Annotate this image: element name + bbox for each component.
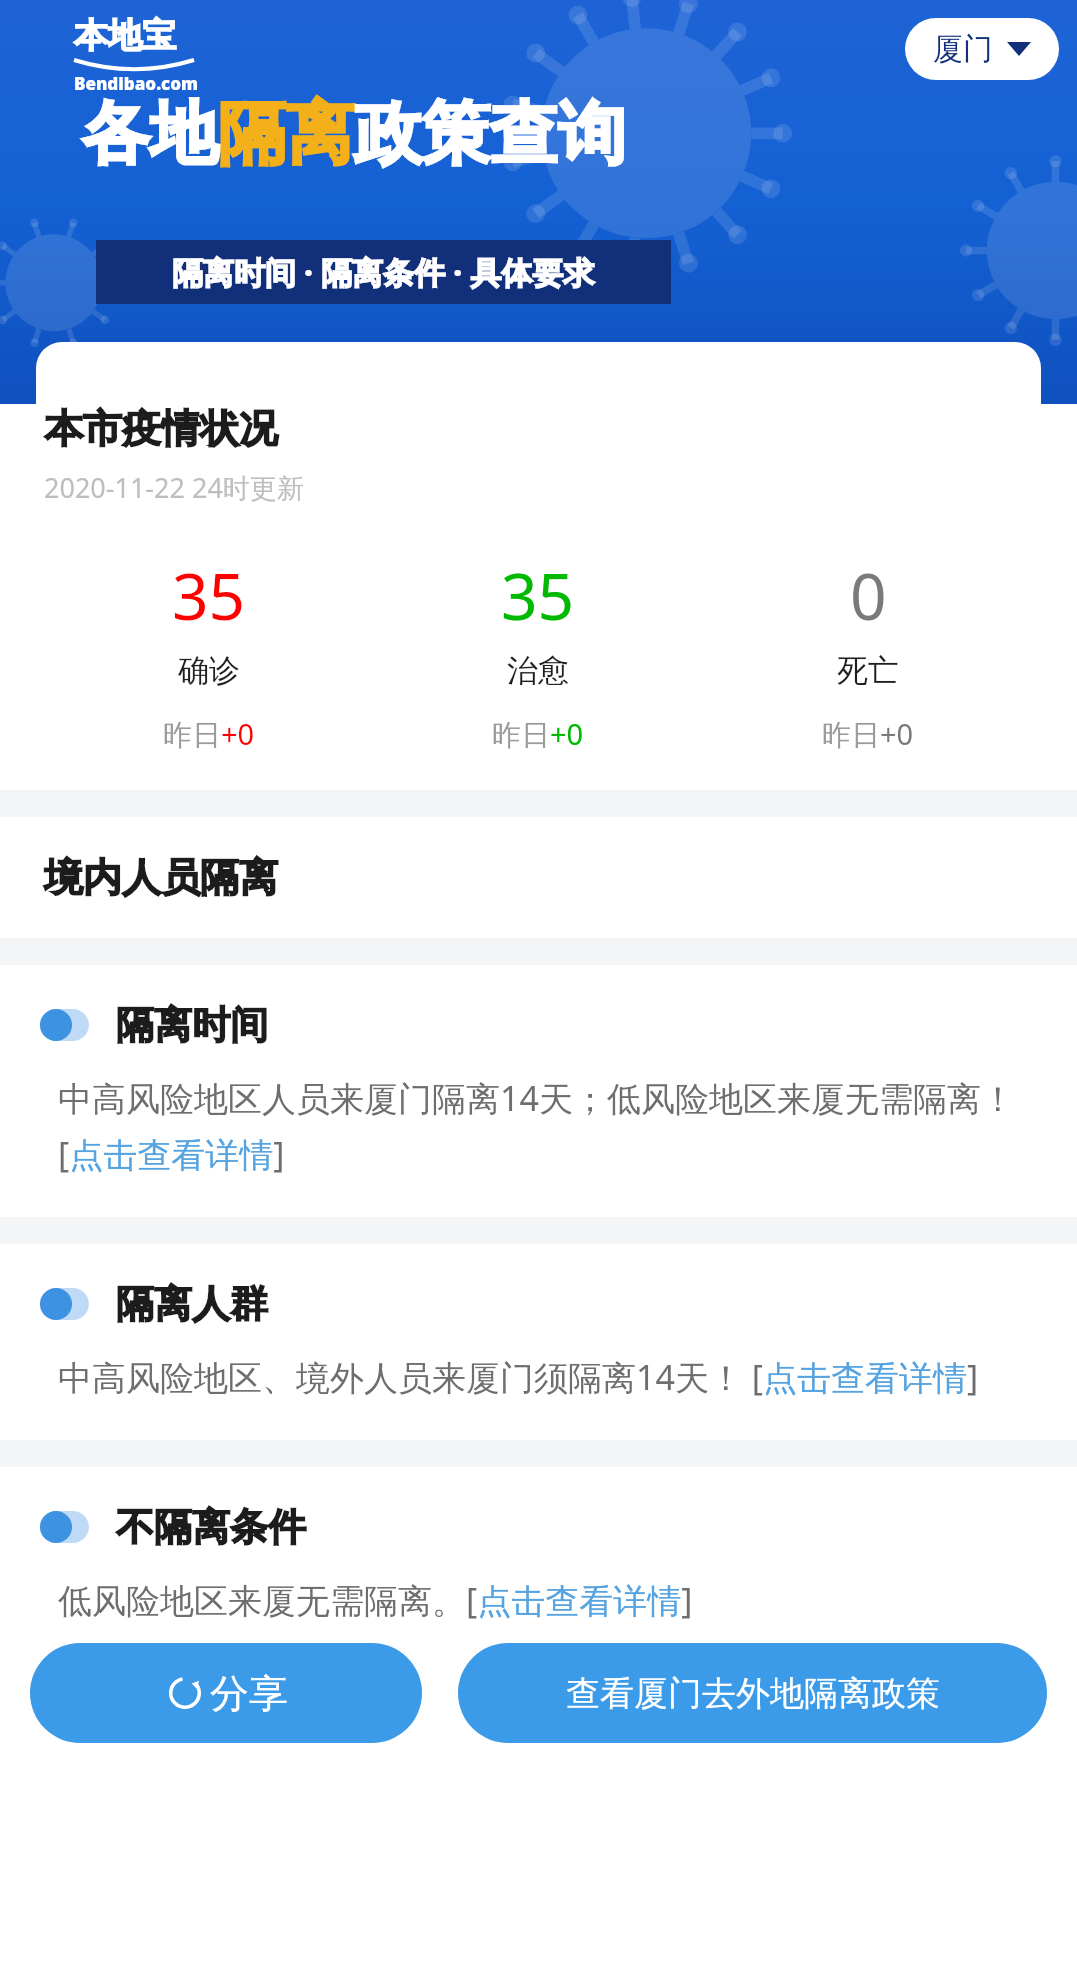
staticText: 昨日+0 (163, 714, 255, 754)
staticText: 确诊 (178, 651, 240, 690)
staticText: 分享 (210, 1669, 288, 1718)
staticText: 不隔离条件 (116, 1503, 306, 1551)
button[interactable]: 不隔离条件 (0, 1467, 1077, 1637)
staticText: 隔离人群 (116, 1280, 268, 1328)
staticText: 35 (501, 552, 575, 639)
staticText: 35 (172, 552, 246, 639)
staticText: 低风险地区来厦无需隔离。[点击查看详情] (58, 1577, 693, 1623)
other: Share (164, 1672, 206, 1714)
staticText: 本市疫情状况 (44, 404, 278, 453)
staticText: 中高风险地区、境外人员来厦门须隔离14天！ [点击查看详情] (58, 1354, 979, 1400)
button[interactable]: Share (30, 1643, 422, 1743)
staticText: 厦门 (933, 30, 993, 68)
staticText: Bendibao.com (74, 72, 199, 95)
staticText: 昨日+0 (822, 714, 914, 754)
staticText: 本地宝 (74, 14, 176, 57)
staticText: 治愈 (507, 651, 569, 690)
staticText: 中高风险地区人员来厦门隔离14天；低风险地区来厦无需隔离！ [点击查看详情] (58, 1075, 1049, 1177)
staticText: 隔离时间 (116, 1001, 268, 1049)
staticText: 隔离时间 · 隔离条件 · 具体要求 (172, 251, 595, 293)
button[interactable]: 隔离时间 (0, 965, 1077, 1217)
button[interactable]: 查看厦门去外地隔离政策 (458, 1643, 1047, 1743)
staticText: 昨日+0 (492, 714, 584, 754)
staticText: 2020-11-22 24时更新 (44, 469, 304, 506)
button[interactable]: 厦门 (905, 18, 1059, 80)
staticText: 查看厦门去外地隔离政策 (566, 1672, 940, 1715)
staticText: 隔离 (218, 92, 354, 178)
staticText: 境内人员隔离 (44, 853, 278, 902)
staticText: 政策查询 (354, 92, 626, 178)
staticText: 死亡 (837, 651, 899, 690)
staticText: 0 (850, 552, 887, 639)
button[interactable]: 隔离人群 (0, 1244, 1077, 1440)
staticText: 各地 (82, 92, 218, 178)
